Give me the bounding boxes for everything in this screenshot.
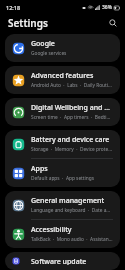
button[interactable]: Search settings <box>106 16 119 29</box>
staticText: Settings <box>8 16 48 30</box>
staticText: Software update <box>31 257 87 265</box>
staticText: Accessibility <box>31 225 72 235</box>
button[interactable]: Advanced features <box>5 66 120 94</box>
staticText: Google services <box>31 50 67 57</box>
staticText: 36% <box>102 4 112 11</box>
staticText: Android Auto · Labs · Daily Routines <box>31 82 113 89</box>
button[interactable]: Battery and device care <box>5 130 120 158</box>
button[interactable]: Digital Wellbeing and parental controls <box>5 98 120 126</box>
button[interactable]: General management <box>5 191 120 219</box>
staticText: TalkBack · Mono audio · Assistant menu <box>31 236 113 243</box>
button[interactable]: Apps <box>5 159 120 187</box>
staticText: Digital Wellbeing and parental controls <box>31 103 113 113</box>
staticText: Language and keyboard · Date and time <box>31 207 113 214</box>
staticText: Advanced features <box>31 71 94 81</box>
button[interactable]: Accessibility <box>5 220 120 248</box>
staticText: General management <box>31 196 105 206</box>
button[interactable]: Google <box>5 34 120 62</box>
staticText: Storage · Memory · Device protection <box>31 146 113 153</box>
staticText: Screen time · App timers · Bedtime mode <box>31 114 113 121</box>
staticText: Battery and device care <box>31 135 110 145</box>
button[interactable]: Software update <box>5 252 120 270</box>
staticText: Default apps · App settings <box>31 175 95 182</box>
staticText: 12:18 <box>6 4 21 11</box>
staticText: Apps <box>31 164 48 174</box>
staticText: Google <box>31 39 55 49</box>
